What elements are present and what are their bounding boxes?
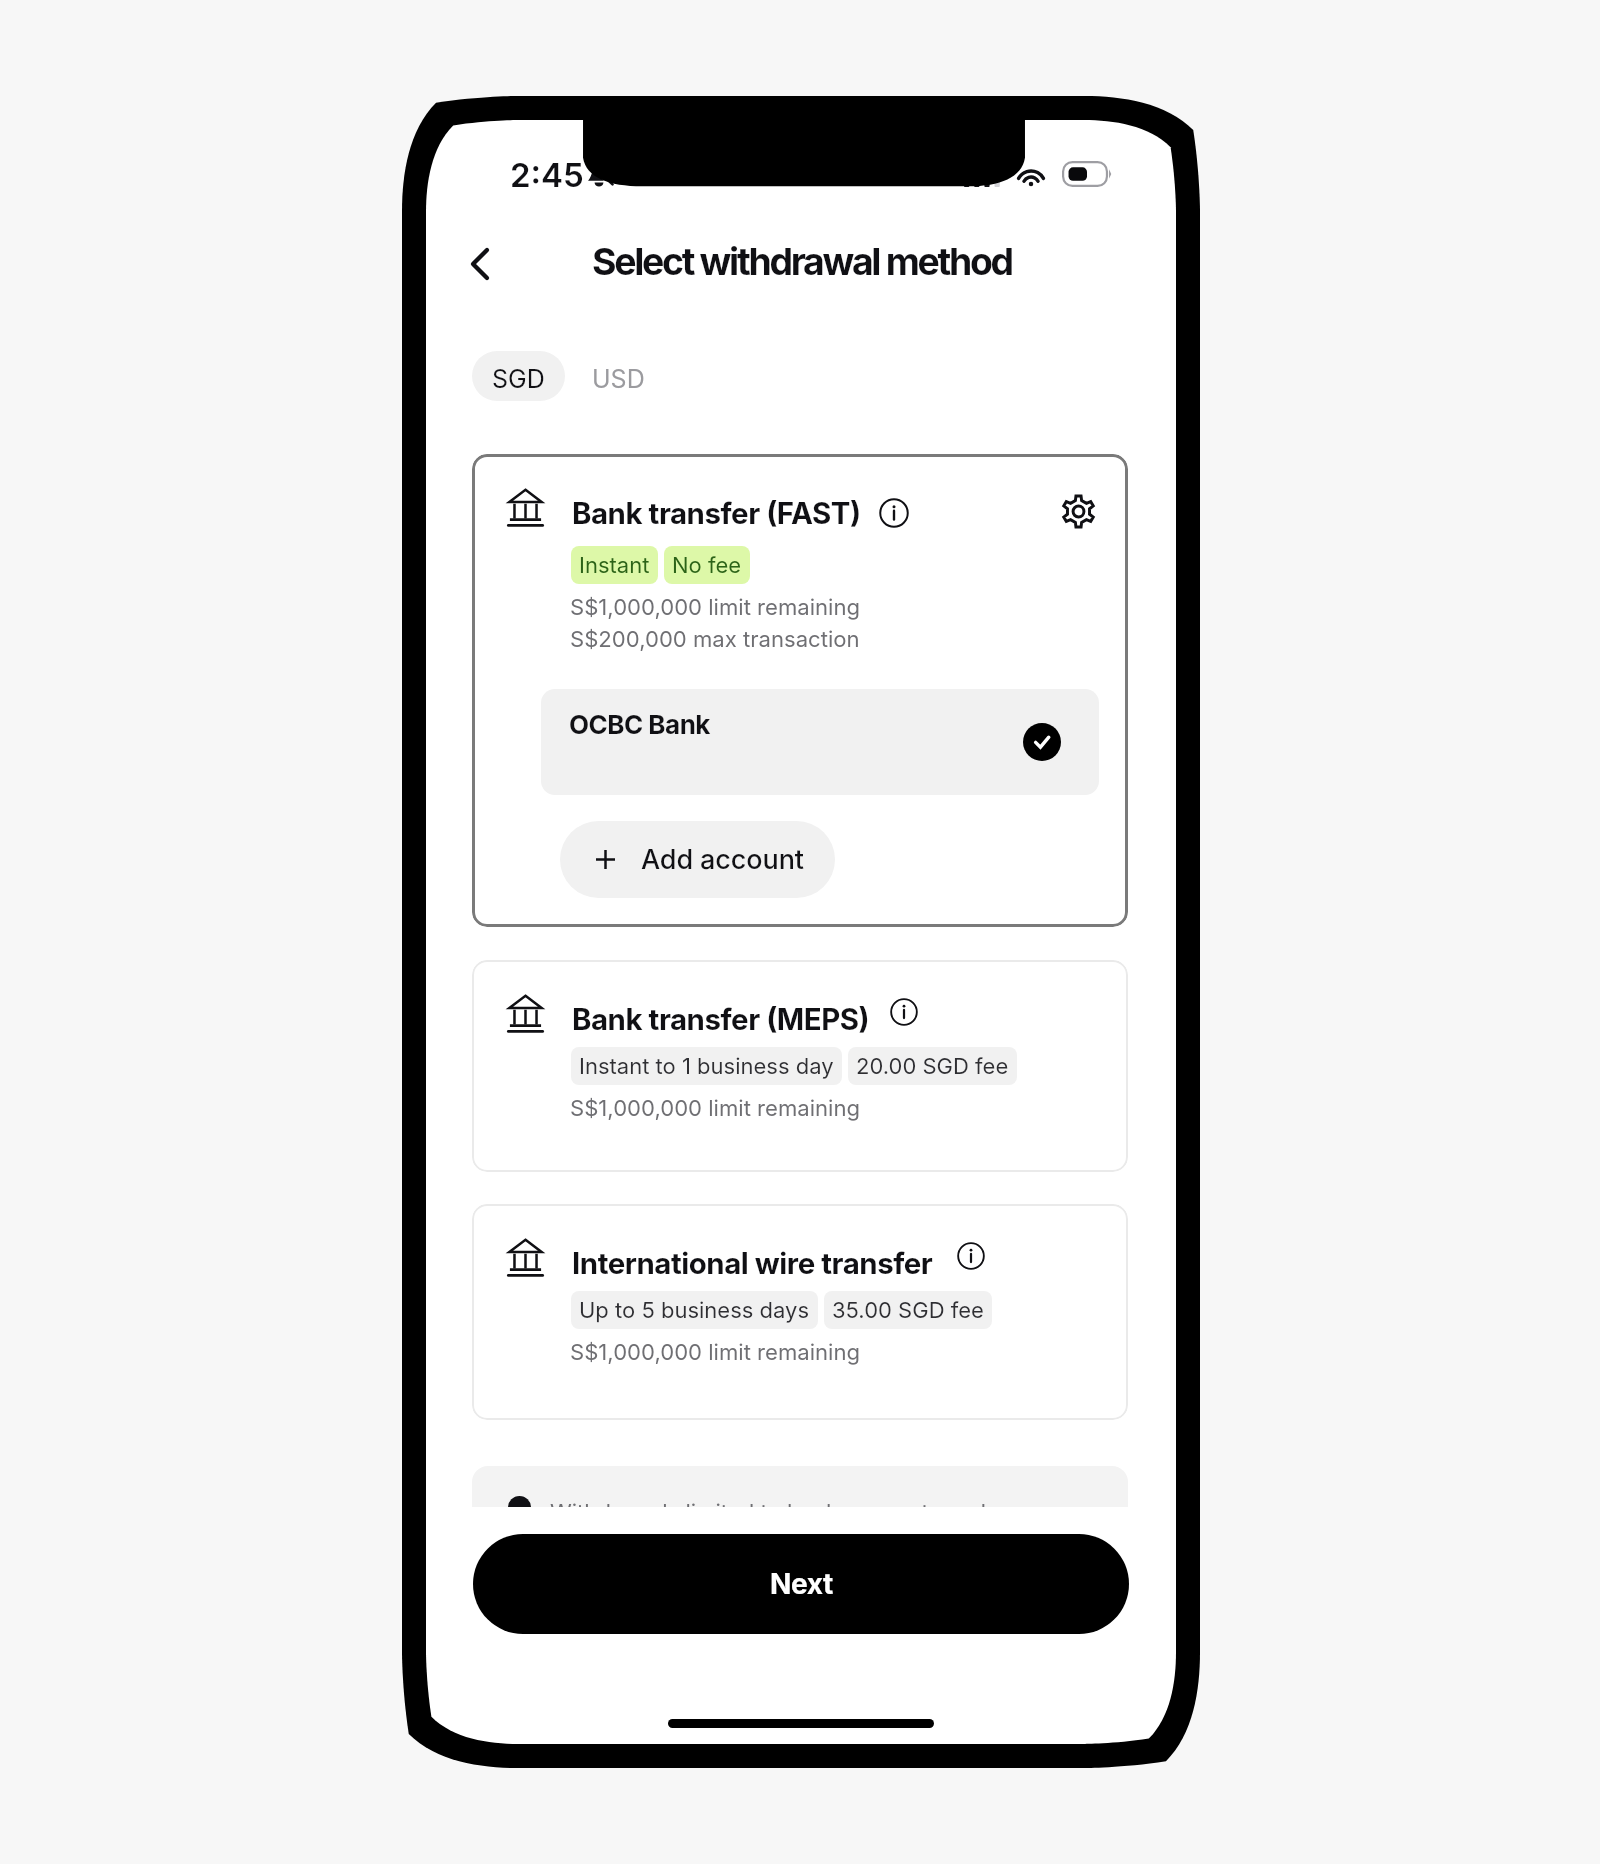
button[interactable]: Bank transfer (FAST) — [472, 454, 1128, 927]
staticText: Select withdrawal method — [592, 239, 1012, 284]
staticText: Bank transfer (MEPS) — [572, 1002, 870, 1038]
staticText: Instant — [579, 552, 650, 579]
button[interactable]: Add account — [560, 821, 835, 898]
staticText: Next — [770, 1567, 833, 1601]
staticText: S$200,000 max transaction — [570, 626, 860, 653]
button[interactable]: International wire transfer — [472, 1204, 1128, 1420]
staticText: 20.00 SGD fee — [856, 1053, 1009, 1080]
button[interactable]: SGD — [472, 351, 565, 401]
button[interactable]: Bank transfer (MEPS) — [472, 960, 1128, 1172]
staticText: Withdrawals limited to bank accounts und… — [550, 1499, 1008, 1507]
staticText: S$1,000,000 limit remaining — [570, 1339, 861, 1366]
staticText: Add account — [641, 843, 804, 876]
button[interactable]: About Bank transfer (MEPS) — [890, 998, 918, 1026]
button[interactable]: About International wire transfer — [957, 1242, 985, 1270]
staticText: OCBC Bank — [569, 709, 710, 740]
staticText: 35.00 SGD fee — [832, 1297, 984, 1324]
staticText: Up to 5 business days — [579, 1297, 810, 1324]
button[interactable]: OCBC Bank — [541, 689, 1099, 795]
staticText: No fee — [672, 552, 742, 579]
staticText: International wire transfer — [572, 1246, 933, 1282]
staticText: SGD — [492, 364, 545, 394]
button[interactable]: Next — [473, 1534, 1129, 1634]
staticText: S$1,000,000 limit remaining — [570, 1095, 861, 1122]
staticText: Instant to 1 business day — [579, 1053, 834, 1080]
button[interactable]: Settings — [1059, 492, 1097, 530]
button[interactable]: USD — [572, 351, 665, 401]
button[interactable]: Back — [452, 236, 508, 292]
staticText: S$1,000,000 limit remaining — [570, 594, 861, 621]
staticText: 2:45 — [510, 155, 584, 195]
staticText: Bank transfer (FAST) — [572, 496, 861, 532]
staticText: USD — [592, 364, 645, 394]
button[interactable]: About bank transfer FAST — [879, 498, 909, 528]
